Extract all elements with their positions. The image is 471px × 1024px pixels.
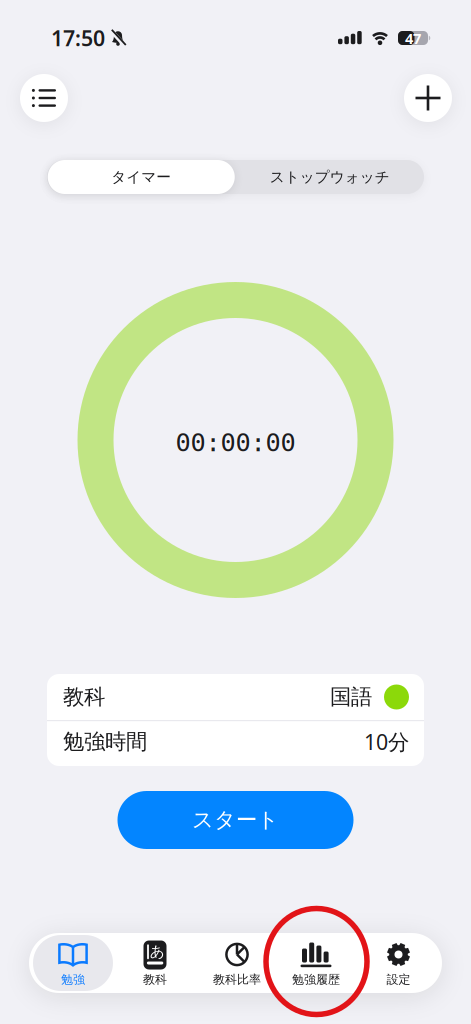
button[interactable]: 教科比率 xyxy=(195,933,277,993)
staticText: 国語 xyxy=(330,684,372,710)
staticText: 教科 xyxy=(143,972,167,987)
button[interactable]: タイマー xyxy=(47,160,235,194)
button[interactable]: 勉強 xyxy=(29,933,113,993)
staticText: 00:00:00 xyxy=(175,428,295,457)
staticText: タイマー xyxy=(111,168,171,186)
button[interactable]: ストップウォッチ xyxy=(235,160,424,194)
staticText: 教科比率 xyxy=(213,972,261,987)
button[interactable]: 教科 xyxy=(47,674,424,720)
button[interactable]: あ xyxy=(113,933,195,993)
button[interactable]: 勉強履歴 xyxy=(277,933,359,993)
staticText: 勉強 xyxy=(61,972,85,987)
staticText: ストップウォッチ xyxy=(270,168,390,186)
button[interactable]: 設定 xyxy=(359,933,442,993)
staticText: 教科 xyxy=(63,684,105,710)
button[interactable]: スタート xyxy=(117,791,353,849)
button[interactable]: 勉強時間 xyxy=(47,721,424,766)
staticText: 勉強時間 xyxy=(63,728,147,755)
staticText: 設定 xyxy=(386,972,410,987)
staticText: あ xyxy=(150,943,165,961)
staticText: 47 xyxy=(405,28,421,48)
staticText: 10分 xyxy=(364,727,409,756)
staticText: スタート xyxy=(192,807,279,833)
staticText: 17:50 xyxy=(51,24,105,52)
button[interactable]: Add xyxy=(404,74,452,122)
button[interactable]: List xyxy=(20,74,68,122)
staticText: 勉強履歴 xyxy=(292,972,340,987)
